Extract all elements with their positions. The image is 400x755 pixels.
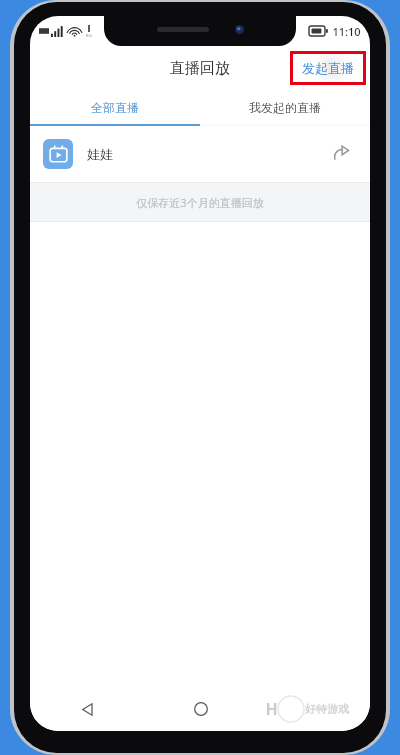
button[interactable]: Home bbox=[144, 687, 257, 731]
button[interactable]: 娃娃 bbox=[30, 126, 370, 182]
staticText: 娃娃 bbox=[87, 146, 113, 162]
staticText: 好特游戏 bbox=[305, 702, 349, 716]
staticText: 发起直播 bbox=[302, 60, 354, 76]
staticText: 我发起的直播 bbox=[249, 100, 321, 115]
button[interactable]: Recents bbox=[257, 687, 370, 731]
button[interactable]: Back bbox=[30, 687, 144, 731]
button[interactable]: 我发起的直播 bbox=[200, 90, 370, 124]
staticText: H bbox=[265, 698, 278, 720]
button[interactable]: 全部直播 bbox=[30, 90, 200, 124]
button[interactable]: Share bbox=[328, 141, 354, 167]
staticText: 直播回放 bbox=[170, 59, 230, 78]
staticText: 11:10 bbox=[332, 24, 361, 39]
staticText: 全部直播 bbox=[91, 100, 139, 115]
staticText: 仅保存近3个月的直播回放 bbox=[136, 195, 264, 210]
button[interactable]: 发起直播 bbox=[293, 54, 363, 82]
staticText: K/s bbox=[86, 33, 92, 38]
